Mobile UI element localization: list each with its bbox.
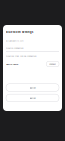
staticText: device name (6, 62, 18, 66)
staticText: Bluetooth settings (6, 30, 33, 34)
button[interactable]: Button (6, 94, 59, 102)
staticText: Button (29, 96, 35, 99)
button[interactable]: Connect (46, 61, 59, 67)
staticText: Connect (49, 63, 56, 65)
button[interactable]: Button (6, 84, 59, 91)
staticText: Devices that can be connected (6, 54, 36, 58)
staticText: Device connected (6, 46, 23, 49)
staticText: Bluetooth is On (6, 39, 23, 42)
staticText: Button (29, 86, 35, 89)
